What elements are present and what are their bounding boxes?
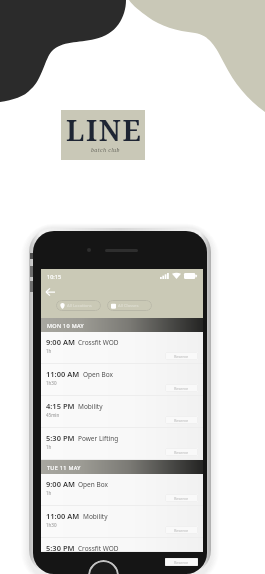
- staticText: Open Box: [83, 370, 113, 379]
- staticText: Reserve: [174, 418, 189, 423]
- staticText: Reserve: [174, 354, 189, 359]
- staticText: 4:15 PM: [46, 401, 75, 411]
- staticText: Mobility: [83, 512, 108, 521]
- button[interactable]: Reserve: [165, 384, 198, 392]
- staticText: Reserve: [174, 496, 189, 501]
- staticText: 1h: [46, 444, 52, 450]
- button[interactable]: 5:30 PM: [41, 428, 203, 460]
- staticText: All Classes: [118, 303, 139, 309]
- button[interactable]: Reserve: [165, 416, 198, 424]
- staticText: 1h: [46, 348, 52, 354]
- staticText: 11:00 AM: [46, 369, 80, 379]
- button[interactable]: All Locations: [56, 300, 101, 311]
- button[interactable]: 9:00 AM: [41, 332, 203, 364]
- button[interactable]: Home: [88, 560, 119, 574]
- button[interactable]: Reserve: [165, 526, 198, 534]
- staticText: 5:30 PM: [46, 543, 75, 552]
- button[interactable]: 9:00 AM: [41, 474, 203, 506]
- staticText: TUE 11 MAY: [47, 464, 81, 471]
- button[interactable]: Reserve: [165, 352, 198, 360]
- staticText: 11:00 AM: [46, 511, 80, 521]
- staticText: Reserve: [174, 386, 189, 391]
- staticText: 9:00 AM: [46, 337, 75, 347]
- staticText: Reserve: [174, 528, 189, 533]
- button[interactable]: 11:00 AM: [41, 506, 203, 538]
- staticText: Reserve: [174, 560, 189, 565]
- button[interactable]: All Classes: [107, 300, 152, 311]
- staticText: All Locations: [67, 303, 92, 309]
- staticText: Mobility: [78, 402, 103, 411]
- button[interactable]: Back: [41, 283, 203, 300]
- staticText: 1h30: [46, 380, 57, 386]
- staticText: Power Lifting: [78, 434, 119, 443]
- staticText: 1h: [46, 490, 52, 496]
- staticText: Crossfit WOD: [78, 338, 119, 347]
- staticText: MON 10 MAY: [47, 322, 84, 329]
- button[interactable]: 11:00 AM: [41, 364, 203, 396]
- staticText: 9:00 AM: [46, 479, 75, 489]
- staticText: Open Box: [78, 480, 108, 489]
- button[interactable]: Reserve: [165, 558, 198, 566]
- button[interactable]: 4:15 PM: [41, 396, 203, 428]
- button[interactable]: 5:30 PM: [41, 538, 203, 552]
- staticText: 1h30: [46, 522, 57, 528]
- staticText: 5:30 PM: [46, 433, 75, 443]
- staticText: Reserve: [174, 450, 189, 455]
- staticText: 10:15: [47, 273, 62, 280]
- staticText: LINE: [66, 111, 143, 149]
- staticText: 45min: [46, 412, 60, 418]
- staticText: batch club: [91, 146, 120, 153]
- button[interactable]: Reserve: [165, 494, 198, 502]
- button[interactable]: Reserve: [165, 448, 198, 456]
- staticText: Crossfit WOD: [78, 544, 119, 553]
